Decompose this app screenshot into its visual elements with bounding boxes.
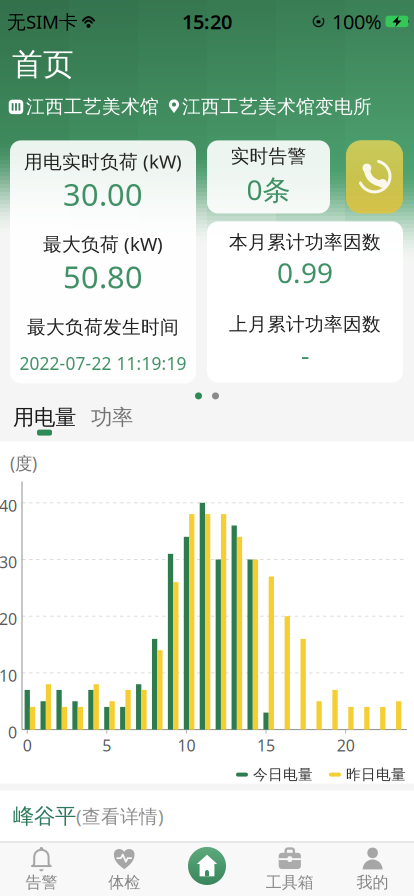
- button[interactable]: [346, 140, 403, 213]
- staticText: 首页: [12, 46, 74, 83]
- staticText: 15: [257, 735, 275, 756]
- button[interactable]: [166, 842, 248, 896]
- staticText: 50.80: [63, 256, 143, 297]
- staticText: 10: [177, 735, 195, 756]
- staticText: (查看详情): [76, 804, 164, 828]
- staticText: 无SIM卡: [7, 9, 78, 34]
- staticText: (度): [10, 452, 37, 475]
- staticText: 功率: [91, 404, 133, 431]
- staticText: 40: [0, 495, 17, 516]
- staticText: 15:20: [182, 8, 232, 35]
- staticText: 0: [8, 722, 17, 743]
- staticText: 0.99: [277, 254, 333, 291]
- staticText: 20: [337, 735, 355, 756]
- staticText: -: [300, 336, 309, 373]
- staticText: 本月累计功率因数: [229, 231, 381, 254]
- staticText: 100%: [327, 8, 382, 35]
- staticText: 用电实时负荷 (kW): [24, 149, 182, 174]
- button[interactable]: 江西工艺美术馆: [8, 95, 159, 118]
- staticText: 20: [0, 608, 17, 629]
- staticText: 我的: [357, 873, 389, 892]
- button[interactable]: 本月累计功率因数: [207, 221, 403, 382]
- staticText: 昨日电量: [346, 766, 406, 784]
- staticText: 用电量: [13, 404, 76, 431]
- button[interactable]: 江西工艺美术馆变电所: [167, 95, 372, 118]
- staticText: 峰谷平: [13, 803, 76, 829]
- button[interactable]: 体检: [83, 842, 166, 896]
- staticText: 今日电量: [253, 766, 313, 784]
- staticText: 江西工艺美术馆: [26, 95, 159, 118]
- staticText: 2022-07-22 11:19:19: [19, 352, 186, 375]
- staticText: 最大负荷 (kW): [43, 231, 163, 256]
- button[interactable]: 用电实时负荷 (kW): [10, 140, 196, 383]
- button[interactable]: 用电量: [13, 401, 76, 436]
- button[interactable]: 功率: [91, 401, 133, 428]
- staticText: 江西工艺美术馆变电所: [182, 95, 372, 118]
- button[interactable]: 峰谷平: [13, 803, 164, 829]
- staticText: 30.00: [63, 174, 143, 214]
- staticText: 10: [0, 665, 17, 686]
- button[interactable]: 工具箱: [248, 842, 331, 896]
- staticText: 工具箱: [266, 873, 314, 892]
- staticText: 上月累计功率因数: [229, 313, 381, 336]
- staticText: 0条: [246, 171, 290, 208]
- button[interactable]: 实时告警: [207, 140, 330, 213]
- staticText: 最大负荷发生时间: [27, 316, 179, 339]
- button[interactable]: 我的: [331, 842, 414, 896]
- button[interactable]: 告警: [0, 842, 83, 896]
- staticText: 0: [23, 735, 32, 756]
- staticText: 5: [102, 735, 111, 756]
- staticText: 30: [0, 551, 17, 573]
- staticText: 实时告警: [230, 145, 306, 168]
- staticText: 体检: [108, 873, 140, 892]
- staticText: 告警: [25, 873, 57, 892]
